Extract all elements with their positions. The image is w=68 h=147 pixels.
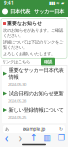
button[interactable]: 試合日程のお知らせ更新 — [1, 89, 67, 105]
staticText: 確認 — [44, 59, 52, 65]
staticText: あ — [5, 126, 9, 132]
staticText: ‹ — [5, 129, 9, 146]
button[interactable]: Tabs — [54, 133, 68, 142]
button[interactable]: 代表メンバー発表予定 — [1, 138, 67, 147]
staticText: example.jp — [22, 126, 45, 132]
staticText: 2024.05.21 — [8, 131, 26, 137]
button[interactable]: 新しい登録情報について — [1, 105, 67, 122]
staticText: 重要なサッカー日本代表情報 — [8, 67, 63, 80]
staticText: よろしくお願いいたします。 — [3, 51, 55, 56]
staticText: 重要なお知らせ — [7, 20, 42, 26]
staticText: 2024.05.28 — [8, 98, 26, 104]
staticText: 詳細については下記のリンクをご覧ください。 — [3, 39, 63, 50]
button[interactable]: チケット販売のご案内 — [1, 122, 67, 138]
button[interactable]: 確認 — [41, 58, 55, 66]
button[interactable]: Forward — [14, 129, 27, 146]
staticText: ❐ — [58, 133, 65, 142]
staticText: 2024.05.25 — [8, 114, 26, 120]
button[interactable]: Bookmarks — [41, 133, 54, 142]
staticText: ↑ — [30, 132, 38, 143]
button[interactable]: 重要なサッカー日本代表情報 — [1, 65, 67, 89]
staticText: ↻ — [59, 126, 63, 132]
staticText: 日本代表 サッカー日本 — [10, 8, 64, 15]
staticText: 9:41 — [4, 0, 14, 6]
button[interactable]: リンクはこちら — [2, 59, 30, 65]
staticText: 新しい登録情報について — [8, 107, 63, 113]
button[interactable]: Share — [27, 132, 41, 143]
staticText: 代表メンバー発表予定 — [8, 140, 58, 146]
staticText: ▮▮▮ ≋ ▰ — [49, 0, 64, 5]
staticText: チケット販売のご案内 — [8, 123, 58, 130]
staticText: 試合日程のお知らせ更新 — [8, 90, 63, 97]
staticText: 次のお知らせがあります。ご確認ください。 — [3, 27, 63, 38]
staticText: リンクはこちら — [2, 59, 30, 65]
staticText: 2024.05.30 — [8, 81, 26, 87]
staticText: › — [18, 129, 22, 146]
button[interactable]: Back — [0, 129, 14, 146]
staticText: ▥ — [44, 133, 52, 142]
